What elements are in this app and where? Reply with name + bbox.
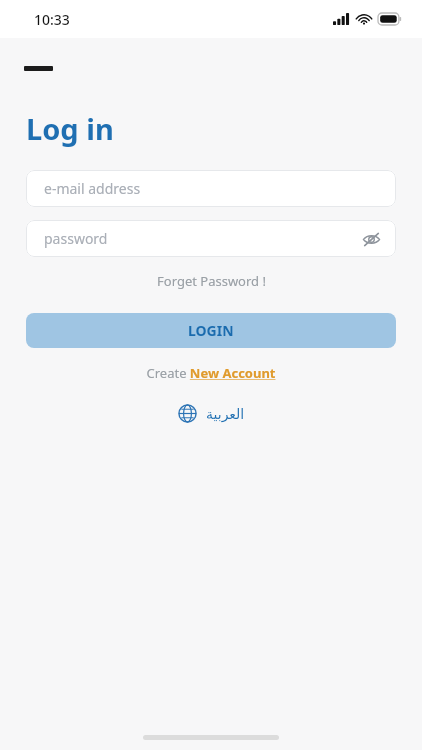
staticText: Forget Password ! xyxy=(157,272,266,290)
staticText: العربية xyxy=(206,406,245,422)
button[interactable]: Create New Account xyxy=(0,364,422,382)
staticText: password xyxy=(44,229,108,248)
button[interactable]: Forget Password ! xyxy=(0,272,422,290)
staticText: LOGIN xyxy=(188,321,234,340)
staticText: Create New Account xyxy=(146,364,276,382)
staticText: e-mail address xyxy=(44,179,141,198)
staticText: Log in xyxy=(26,109,114,148)
button[interactable]: Back xyxy=(24,66,53,71)
button[interactable]: Show password xyxy=(360,228,382,250)
button[interactable]: e-mail address xyxy=(26,170,396,207)
button[interactable]: العربية xyxy=(0,404,422,423)
button[interactable]: password xyxy=(26,220,396,257)
button[interactable]: LOGIN xyxy=(26,313,396,348)
staticText: 10:33 xyxy=(34,10,70,29)
